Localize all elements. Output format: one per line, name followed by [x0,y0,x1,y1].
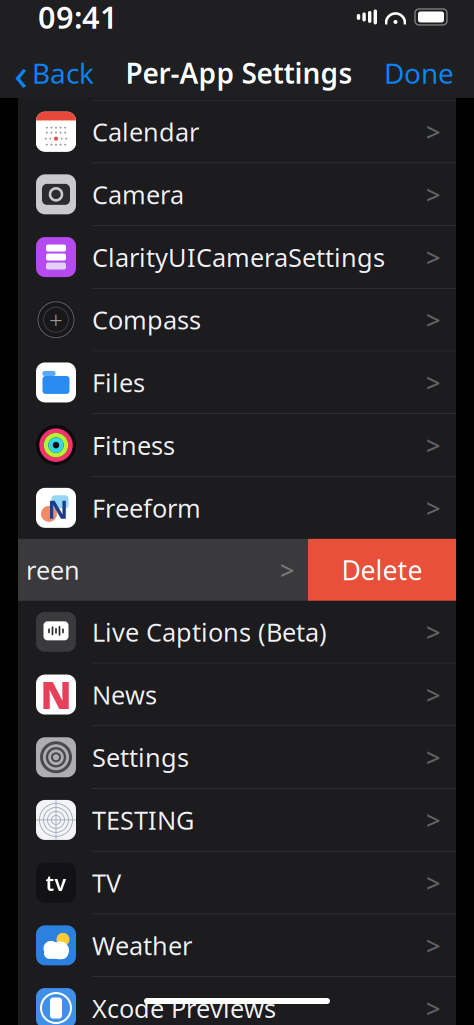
button[interactable]: N [18,477,456,539]
staticText: > [280,553,294,587]
staticText: Calendar [92,115,199,148]
staticText: Files [92,366,145,399]
button[interactable]: Xcode Previews [18,977,456,1025]
button[interactable]: ‹ [0,48,104,98]
staticText: N [47,492,68,526]
staticText: > [426,928,440,962]
staticText: > [426,740,440,774]
button[interactable]: reen [18,539,308,601]
button[interactable]: Delete [308,539,456,601]
staticText: > [426,115,440,148]
staticText: Live Captions (Beta) [92,615,327,649]
staticText: TV [92,866,121,899]
staticText: Back [32,54,94,92]
staticText: > [426,866,440,899]
staticText: > [426,491,440,525]
staticText: Done [384,54,454,92]
staticText: Camera [92,177,184,211]
button[interactable]: N [18,663,456,725]
staticText: > [426,678,440,711]
staticText: > [426,177,440,211]
staticText: > [426,803,440,837]
staticText: Freeform [92,491,201,525]
button[interactable]: Files [18,351,456,413]
staticText: > [426,991,440,1025]
staticText: Compass [92,303,201,336]
button[interactable]: Done [374,48,474,98]
staticText: Weather [92,928,192,962]
staticText: Xcode Previews [92,991,276,1025]
staticText: reen [26,553,80,587]
staticText: Fitness [92,428,175,462]
staticText: N [40,670,71,719]
staticText: 09:41 [38,0,118,37]
staticText: > [426,615,440,649]
staticText: News [92,678,157,711]
button[interactable]: TESTING [18,789,456,851]
staticText: > [426,366,440,399]
button[interactable]: Settings [18,726,456,788]
button[interactable]: + [18,289,456,351]
button[interactable]: tv [18,852,456,914]
button[interactable]: Camera [18,163,456,225]
staticText: > [426,303,440,336]
button[interactable]: Calendar [18,101,456,163]
staticText: Settings [92,740,189,774]
staticText: TESTING [92,803,194,837]
button[interactable]: Weather [18,914,456,976]
staticText: ClarityUICameraSettings [92,240,385,274]
staticText: Delete [341,552,422,587]
button[interactable]: Live Captions (Beta) [18,601,456,663]
staticText: > [426,240,440,274]
button[interactable]: Fitness [18,414,456,476]
staticText: > [426,428,440,462]
staticText: Per-App Settings [125,54,352,92]
staticText: tv [45,868,66,897]
staticText: + [49,304,63,336]
staticText: ‹ [14,43,28,103]
button[interactable]: ClarityUICameraSettings [18,226,456,288]
